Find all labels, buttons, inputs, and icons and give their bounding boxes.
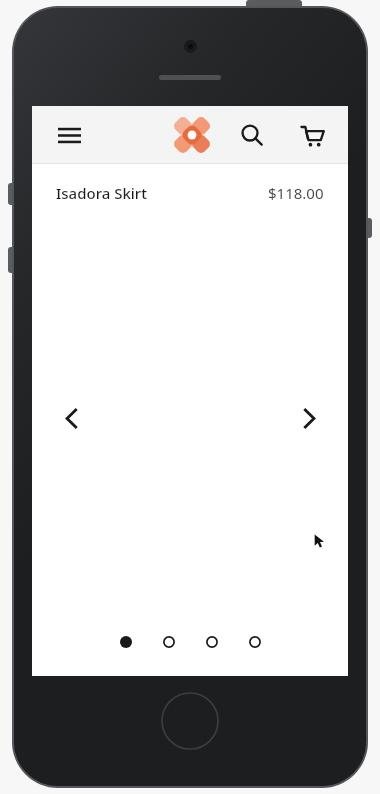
staticText: Isadora Skirt	[56, 183, 147, 203]
button[interactable]: Go to image 1	[115, 631, 137, 653]
button[interactable]: Home	[172, 115, 212, 155]
button[interactable]: Go to image 4	[244, 631, 266, 653]
button[interactable]: Menu	[48, 114, 90, 156]
button[interactable]: Cart	[290, 113, 334, 157]
staticText: $118.00	[268, 183, 324, 203]
button[interactable]: Search	[230, 113, 274, 157]
button[interactable]: Next image	[288, 398, 328, 438]
button[interactable]: Go to image 2	[158, 631, 180, 653]
button[interactable]: Previous image	[52, 398, 92, 438]
button[interactable]: Go to image 3	[201, 631, 223, 653]
button[interactable]: Isadora Skirt	[32, 164, 348, 221]
